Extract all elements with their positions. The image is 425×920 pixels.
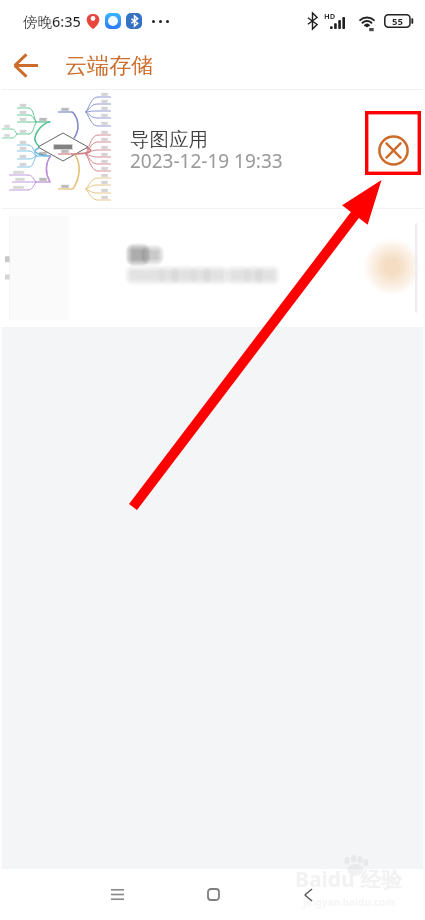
staticText: 2023-12-19 19:33 — [130, 148, 283, 174]
staticText: Baidu 经验 — [295, 865, 403, 894]
button[interactable]: Back — [0, 42, 48, 89]
staticText: 导图应用 — [130, 127, 208, 152]
staticText: 云端存储 — [65, 52, 153, 80]
staticText: jingyan.baidu.com — [303, 895, 395, 909]
staticText: 55 — [392, 15, 403, 28]
staticText: 傍晚6:35 — [23, 11, 81, 31]
button[interactable]: Delete — [362, 121, 418, 177]
button[interactable] — [0, 209, 425, 327]
button[interactable]: Back — [240, 869, 425, 920]
button[interactable]: Recent apps — [0, 869, 144, 920]
button[interactable]: Home — [144, 869, 240, 920]
staticText: HD — [324, 11, 336, 21]
button[interactable]: 导图应用 — [0, 90, 425, 208]
